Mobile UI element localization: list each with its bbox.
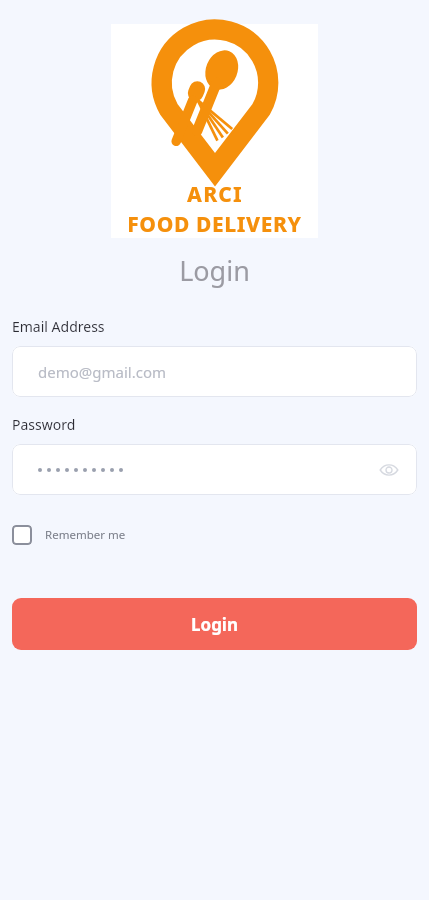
staticText: Login <box>179 252 250 289</box>
staticText: Login <box>191 613 239 636</box>
button[interactable]: Remember me <box>12 523 126 547</box>
button[interactable]: Show password <box>12 444 417 495</box>
staticText: Password <box>12 415 76 434</box>
staticText: demo@gmail.com <box>38 362 166 382</box>
button[interactable]: demo@gmail.com <box>12 346 417 397</box>
button[interactable]: Show password <box>375 456 403 484</box>
staticText: Remember me <box>45 527 126 543</box>
button[interactable]: Login <box>12 598 417 650</box>
staticText: Email Address <box>12 317 105 336</box>
staticText: FOOD DELIVERY <box>127 210 302 238</box>
staticText: ARCI <box>187 180 243 209</box>
